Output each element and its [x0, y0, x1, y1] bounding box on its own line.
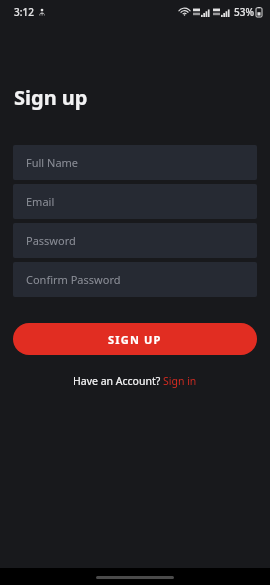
staticText: 53% — [234, 5, 254, 19]
button[interactable]: Password — [13, 223, 257, 258]
button[interactable]: Full Name — [13, 145, 257, 180]
staticText: Password — [26, 233, 76, 248]
staticText: Sign up — [14, 84, 88, 111]
staticText: 3:12 — [14, 5, 34, 19]
button[interactable]: Sign in — [163, 374, 197, 388]
button[interactable]: Email — [13, 184, 257, 219]
staticText: Confirm Password — [26, 272, 121, 287]
staticText: Email — [26, 194, 55, 209]
staticText: Sign in — [163, 374, 197, 388]
button[interactable]: SIGN UP — [13, 323, 257, 355]
staticText: Have an Account? — [73, 374, 163, 388]
staticText: Full Name — [26, 155, 79, 170]
button[interactable]: Confirm Password — [13, 262, 257, 297]
staticText: SIGN UP — [108, 332, 162, 347]
